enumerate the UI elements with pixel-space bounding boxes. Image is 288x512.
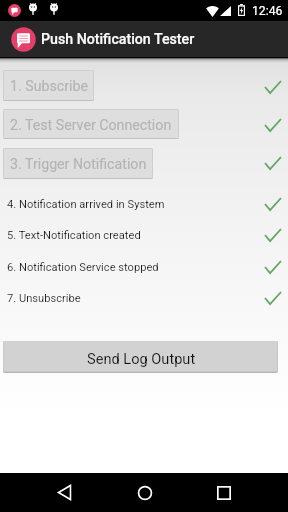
button[interactable]: Recent apps: [200, 473, 248, 512]
staticText: Send Log Output: [87, 350, 196, 367]
button[interactable]: Back: [40, 473, 88, 512]
button[interactable]: 3. Trigger Notification: [3, 148, 153, 179]
button[interactable]: Send Log Output: [3, 341, 278, 373]
button[interactable]: 2. Test Server Connection: [3, 109, 179, 139]
staticText: 6. Notification Service stopped: [7, 261, 159, 274]
staticText: 1. Subscribe: [10, 78, 88, 95]
staticText: 7. Unsubscribe: [7, 292, 81, 305]
button[interactable]: Home: [120, 473, 168, 512]
staticText: 12:46: [252, 4, 283, 18]
staticText: 5. Text-Notification created: [7, 229, 141, 242]
staticText: Push Notification Tester: [41, 31, 195, 48]
staticText: 3. Trigger Notification: [10, 156, 147, 173]
button[interactable]: 1. Subscribe: [3, 70, 94, 101]
staticText: 2. Test Server Connection: [10, 117, 172, 134]
staticText: 4. Notification arrived in System: [7, 198, 165, 211]
